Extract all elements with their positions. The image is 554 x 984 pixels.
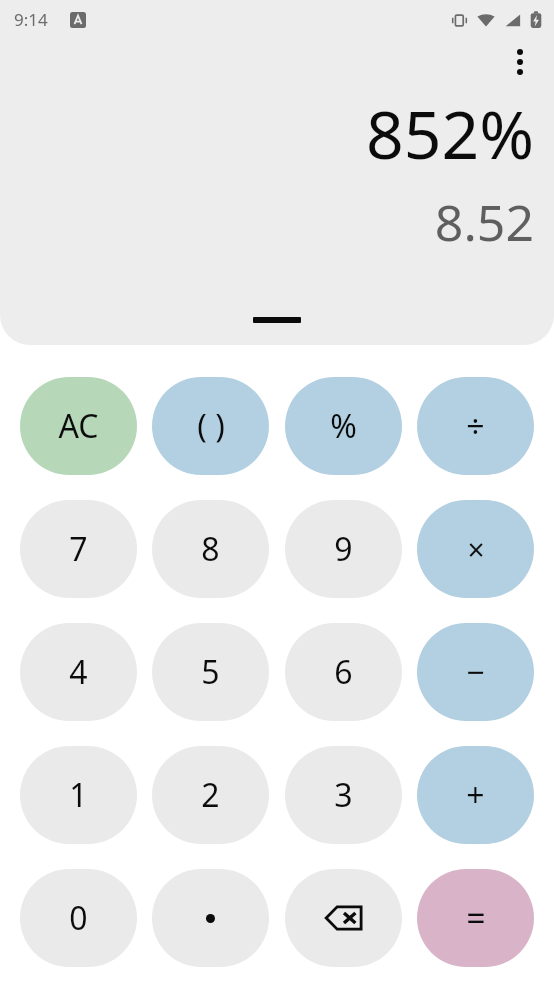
staticText: + bbox=[466, 773, 485, 817]
button[interactable]: Divide bbox=[417, 377, 534, 475]
staticText: 8 bbox=[201, 527, 220, 571]
button[interactable]: 5 bbox=[152, 623, 269, 721]
staticText: 3 bbox=[334, 773, 353, 817]
staticText: 852% bbox=[0, 88, 534, 178]
button[interactable]: ( ) bbox=[152, 377, 269, 475]
button[interactable]: 1 bbox=[20, 746, 137, 844]
staticText: − bbox=[466, 650, 485, 694]
staticText: 1 bbox=[69, 773, 88, 817]
staticText: 5 bbox=[201, 650, 220, 694]
staticText: ÷ bbox=[466, 404, 485, 448]
button[interactable]: Multiply bbox=[417, 500, 534, 598]
staticText: = bbox=[466, 895, 486, 941]
button[interactable]: Decimal point bbox=[152, 869, 269, 967]
staticText: AC bbox=[58, 404, 99, 448]
staticText: × bbox=[467, 529, 485, 570]
staticText: % bbox=[330, 404, 357, 448]
button[interactable]: More options bbox=[498, 40, 542, 84]
staticText: 0 bbox=[69, 896, 88, 940]
button[interactable] bbox=[253, 317, 301, 323]
button[interactable]: % bbox=[285, 377, 402, 475]
staticText: 2 bbox=[201, 773, 220, 817]
button[interactable]: 8 bbox=[152, 500, 269, 598]
staticText: 6 bbox=[334, 650, 353, 694]
button[interactable]: Minus bbox=[417, 623, 534, 721]
button[interactable]: Plus bbox=[417, 746, 534, 844]
staticText: ( ) bbox=[197, 404, 225, 448]
staticText: 4 bbox=[69, 650, 88, 694]
button[interactable]: Backspace bbox=[285, 869, 402, 967]
button[interactable]: 3 bbox=[285, 746, 402, 844]
button[interactable]: 2 bbox=[152, 746, 269, 844]
staticText: 7 bbox=[69, 527, 88, 571]
button[interactable]: Equals bbox=[417, 869, 534, 967]
button[interactable]: 0 bbox=[20, 869, 137, 967]
button[interactable]: 9 bbox=[285, 500, 402, 598]
staticText: 9 bbox=[334, 527, 353, 571]
staticText: 9:14 bbox=[14, 8, 48, 31]
button[interactable]: AC bbox=[20, 377, 137, 475]
button[interactable]: 7 bbox=[20, 500, 137, 598]
button[interactable]: 4 bbox=[20, 623, 137, 721]
button[interactable]: 6 bbox=[285, 623, 402, 721]
staticText: 8.52 bbox=[0, 188, 534, 256]
